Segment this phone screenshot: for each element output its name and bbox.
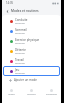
staticText: Paramètres (46, 93, 57, 96)
button[interactable]: Ajouter un mode (2, 76, 61, 84)
staticText: Désactivé (15, 52, 25, 55)
button[interactable]: Détente (3, 46, 60, 56)
staticText: 14:05 (6, 1, 14, 5)
staticText: Conduite (15, 18, 28, 22)
staticText: Routines (27, 93, 36, 96)
staticText: Désactivé (15, 62, 25, 65)
button[interactable]: Routines (21, 83, 41, 103)
button[interactable]: Travail (3, 56, 60, 66)
staticText: Détente (15, 48, 26, 52)
button[interactable]: Modes (2, 83, 21, 103)
button[interactable]: Jeu (3, 66, 60, 76)
staticText: Exercice physique (15, 38, 40, 42)
staticText: Désactivé (15, 32, 25, 35)
button[interactable]: Paramètres (41, 83, 61, 103)
staticText: Modes et routines (11, 9, 39, 13)
button[interactable]: Conduite (3, 16, 60, 26)
staticText: Désactivé (15, 72, 25, 75)
button[interactable]: Exercice physique (3, 36, 60, 46)
staticText: Travail (15, 58, 24, 62)
staticText: Jeu (15, 68, 20, 72)
button[interactable]: Back (4, 8, 10, 14)
button[interactable]: Sommeil (3, 26, 60, 36)
staticText: Désactivé (15, 42, 25, 45)
staticText: Désactivé (15, 22, 25, 25)
staticText: Ajouter un mode (14, 78, 37, 82)
staticText: Modes (8, 93, 15, 96)
staticText: Sommeil (15, 28, 27, 32)
